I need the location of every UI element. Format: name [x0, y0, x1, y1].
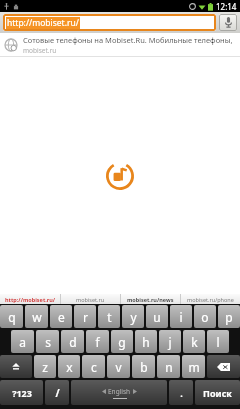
button[interactable]: r [74, 305, 96, 328]
button[interactable]: g [111, 330, 133, 353]
staticText: l [216, 334, 220, 350]
staticText: t [107, 309, 112, 325]
button[interactable]: t [98, 305, 120, 328]
button[interactable]: Space [71, 380, 167, 405]
staticText: ?123 [12, 387, 32, 399]
staticText: d [69, 334, 77, 350]
button[interactable]: i [170, 305, 192, 328]
button[interactable]: o [194, 305, 216, 328]
button[interactable]: mobiset.ru/news [121, 294, 180, 304]
button[interactable]: b [132, 355, 155, 378]
staticText: r [83, 309, 88, 325]
staticText: k [191, 334, 198, 350]
staticText: q [8, 309, 16, 325]
button[interactable]: m [182, 355, 205, 378]
staticText: i [179, 309, 183, 325]
staticText: o [201, 309, 209, 325]
staticText: f [95, 334, 100, 350]
button[interactable]: f [86, 330, 109, 353]
button[interactable]: q [0, 305, 23, 328]
staticText: j [168, 334, 172, 350]
staticText: mobiset.ru [23, 46, 57, 55]
button[interactable]: ?123 [0, 380, 43, 405]
button[interactable]: p [218, 305, 240, 328]
staticText: mobiset.ru/news [127, 296, 174, 303]
button[interactable]: a [11, 330, 34, 353]
button[interactable]: k [183, 330, 205, 353]
button[interactable]: c [82, 355, 105, 378]
staticText: p [225, 309, 233, 325]
staticText: . [180, 387, 183, 399]
button[interactable]: http://mobiset.ru/ [3, 14, 216, 31]
staticText: English [108, 387, 131, 396]
button[interactable]: e [50, 305, 72, 328]
button[interactable]: . [169, 380, 193, 405]
staticText: Сотовые телефоны на Mobiset.Ru. Мобильны… [23, 35, 236, 45]
staticText: y [130, 309, 137, 325]
staticText: h [142, 334, 150, 350]
button[interactable]: Shift [0, 355, 32, 378]
button[interactable]: v [107, 355, 130, 378]
staticText: mobiset.ru/phone [187, 296, 234, 303]
staticText: b [140, 359, 148, 375]
button[interactable]: Поиск [195, 380, 240, 405]
staticText: w [32, 309, 42, 325]
button[interactable]: y [122, 305, 144, 328]
staticText: m [188, 359, 200, 375]
staticText: http://mobiset.ru/ [7, 17, 79, 29]
button[interactable]: Сотовые телефоны на Mobiset.Ru. Мобильны… [0, 33, 240, 56]
staticText: g [118, 334, 126, 350]
button[interactable]: s [36, 330, 59, 353]
staticText: v [115, 359, 122, 375]
button[interactable]: mobiset.ru [61, 294, 120, 304]
staticText: a [19, 334, 26, 350]
button[interactable]: n [157, 355, 180, 378]
staticText: mobiset.ru [76, 296, 105, 303]
staticText: 12:14 [216, 1, 237, 12]
button[interactable]: w [25, 305, 48, 328]
button[interactable]: h [135, 330, 157, 353]
staticText: x [66, 359, 73, 375]
staticText: c [91, 359, 97, 375]
staticText: http://mobiset.ru/ [5, 296, 56, 303]
button[interactable]: l [207, 330, 229, 353]
button[interactable]: / [45, 380, 69, 405]
staticText: z [42, 359, 48, 375]
button[interactable]: http://mobiset.ru/ [0, 294, 60, 304]
staticText: n [165, 359, 173, 375]
button[interactable]: u [146, 305, 168, 328]
button[interactable]: z [34, 355, 56, 378]
button[interactable]: mobiset.ru/phone [181, 294, 240, 304]
button[interactable]: d [61, 330, 84, 353]
button[interactable]: Backspace [207, 355, 240, 378]
staticText: Поиск [203, 387, 232, 399]
button[interactable]: j [159, 330, 181, 353]
button[interactable]: Voice search [219, 14, 237, 31]
staticText: / [55, 386, 60, 400]
button[interactable]: x [58, 355, 80, 378]
staticText: e [58, 309, 65, 325]
staticText: s [45, 334, 51, 350]
staticText: u [153, 309, 161, 325]
